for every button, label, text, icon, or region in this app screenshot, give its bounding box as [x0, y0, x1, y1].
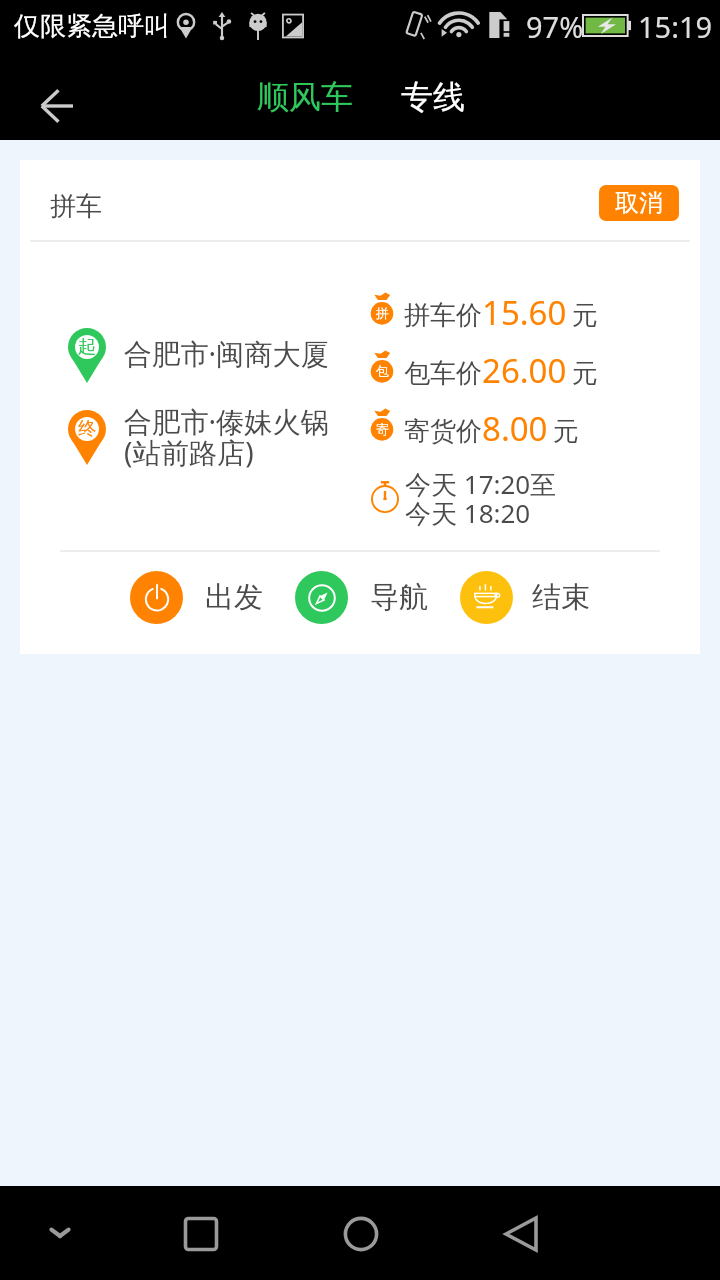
staticText: 包车价 [404, 357, 482, 390]
button[interactable]: Recents [156, 1186, 246, 1280]
staticText: 元 [572, 357, 598, 390]
button[interactable]: Hide keyboard [15, 1186, 105, 1280]
staticText: 合肥市·闽商大厦 [124, 334, 329, 373]
staticText: 专线 [401, 77, 465, 117]
button[interactable]: Home [316, 1186, 406, 1280]
staticText: 拼车 [50, 190, 102, 223]
staticText: 起 [78, 335, 97, 358]
staticText: 寄 [376, 421, 389, 437]
staticText: 15.60 [482, 290, 567, 335]
staticText: 元 [572, 299, 598, 332]
staticText: 取消 [615, 188, 663, 218]
staticText: 拼 [376, 305, 389, 321]
staticText: 仅限紧急呼叫 [14, 10, 170, 43]
staticText: 97% [526, 7, 584, 46]
button[interactable]: 顺风车 [246, 54, 364, 140]
staticText: 元 [553, 415, 579, 448]
staticText: 顺风车 [257, 77, 353, 117]
staticText: 拼车价 [404, 299, 482, 332]
button[interactable]: 结束 [460, 571, 598, 624]
button[interactable]: Back [16, 54, 96, 140]
button[interactable]: Back [476, 1186, 566, 1280]
staticText: 出发 [205, 579, 263, 616]
button[interactable]: 取消 [599, 185, 679, 221]
staticText: 寄货价 [404, 415, 482, 448]
staticText: 导航 [370, 579, 428, 616]
staticText: 8.00 [482, 406, 548, 451]
staticText: 包 [376, 363, 389, 379]
staticText: 今天 18:20 [405, 495, 531, 531]
staticText: 结束 [532, 579, 590, 616]
button[interactable]: 导航 [295, 571, 436, 624]
button[interactable]: 专线 [392, 54, 474, 140]
staticText: 终 [78, 417, 97, 440]
staticText: 26.00 [482, 348, 567, 393]
staticText: (站前路店) [124, 433, 254, 472]
staticText: 15:19 [638, 7, 713, 46]
button[interactable]: 出发 [130, 571, 271, 624]
staticText: 今天 17:20至 [405, 466, 557, 502]
staticText: 合肥市·傣妹火锅 [124, 402, 329, 441]
